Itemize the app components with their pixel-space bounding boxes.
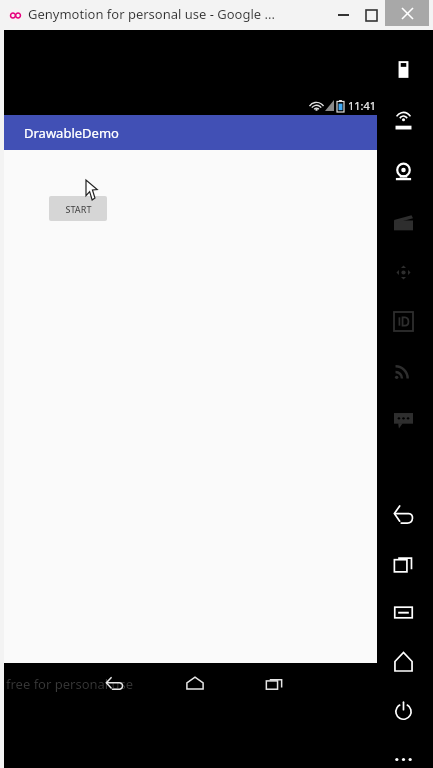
button[interactable]: Maximize bbox=[357, 0, 385, 30]
staticText: free for personal use bbox=[6, 675, 134, 693]
button[interactable]: Recent apps bbox=[386, 546, 420, 580]
button[interactable]: Back bbox=[386, 497, 420, 531]
button[interactable]: More options bbox=[386, 742, 420, 768]
button[interactable]: START bbox=[49, 196, 107, 221]
staticText: START bbox=[65, 203, 92, 215]
button[interactable]: Home bbox=[386, 644, 420, 678]
button[interactable]: Close bbox=[385, 0, 429, 26]
button[interactable]: Recent apps bbox=[255, 669, 293, 697]
button[interactable]: Menu bbox=[386, 595, 420, 629]
staticText: DrawableDemo bbox=[24, 124, 119, 142]
staticText: Genymotion for personal use - Google ... bbox=[28, 5, 275, 23]
button[interactable]: Power bbox=[386, 693, 420, 727]
button[interactable]: GPS bbox=[386, 104, 420, 138]
button[interactable]: Video recording bbox=[386, 206, 420, 240]
button[interactable]: Minimize bbox=[329, 0, 357, 30]
button[interactable]: Identifiers bbox=[386, 304, 420, 338]
button[interactable]: Back bbox=[95, 669, 133, 697]
staticText: 11:41 bbox=[348, 98, 377, 113]
button[interactable]: Network bbox=[386, 353, 420, 387]
button[interactable]: Home bbox=[176, 669, 214, 697]
button[interactable]: Move / accelerometer bbox=[386, 255, 420, 289]
button[interactable]: Camera bbox=[386, 154, 420, 188]
button[interactable]: SMS bbox=[386, 402, 420, 436]
button[interactable]: Battery bbox=[386, 52, 420, 86]
